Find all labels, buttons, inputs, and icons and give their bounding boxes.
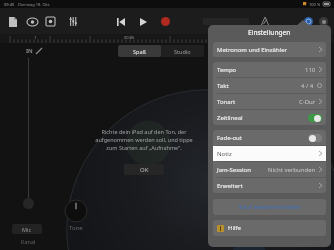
staticText: Kauf wiederherstellen (239, 203, 301, 211)
button[interactable]: Mixer (67, 15, 80, 28)
staticText: Fade-out (217, 134, 242, 142)
staticText: Spaß (133, 48, 146, 55)
button[interactable]: Zum Anfang (114, 15, 127, 28)
button[interactable]: Mic (12, 224, 42, 234)
button[interactable]: Mehr (319, 17, 328, 26)
staticText: Jam-Session (217, 166, 251, 174)
staticText: Tone (69, 224, 83, 232)
staticText: Richte dein iPad auf den Ton, der aufgen… (95, 128, 193, 152)
staticText: 110 (305, 66, 316, 74)
button[interactable]: Tempo (213, 62, 326, 77)
staticText: Tonart (217, 98, 236, 106)
staticText: Dienstag 18. Okt. (18, 2, 51, 7)
button[interactable]: Jam-Session (213, 162, 326, 177)
button[interactable]: Aufnahme (161, 17, 170, 26)
button[interactable]: Tracks (44, 15, 57, 28)
button[interactable]: Zeitlineal (213, 110, 326, 125)
staticText: Nicht verbunden (268, 166, 316, 174)
staticText: Metronom und Einzähler (217, 46, 288, 54)
staticText: C-Dur (299, 98, 316, 106)
button[interactable]: Abspielen (137, 15, 150, 28)
staticText: IN (26, 47, 33, 55)
staticText: Mic (22, 226, 32, 233)
staticText: Tempo (217, 66, 237, 74)
staticText: 09:45 (4, 2, 15, 7)
button[interactable]: Metronom und Einzähler (213, 42, 326, 57)
button[interactable]: Eingangspegel (23, 198, 34, 209)
button[interactable]: Spaß (118, 45, 161, 57)
button[interactable]: Hilfe (213, 220, 326, 236)
button[interactable]: OK (124, 164, 164, 175)
staticText: Kanal (21, 238, 36, 245)
staticText: Erweitert (217, 182, 243, 190)
button[interactable]: Einstellungen (304, 17, 313, 26)
staticText: 4 / 4 (301, 82, 314, 90)
staticText: Takt (217, 82, 229, 90)
button[interactable]: Tonart (213, 94, 326, 109)
staticText: 100 % (309, 2, 321, 7)
staticText: 00:06 (124, 35, 135, 40)
button[interactable]: Studio (161, 45, 204, 57)
staticText: 1 (34, 35, 37, 40)
button[interactable]: Fade-out (213, 130, 326, 145)
button[interactable]: Metronom (258, 15, 271, 28)
button[interactable]: Erweitert (213, 178, 326, 193)
staticText: Zeitlineal (217, 114, 243, 122)
staticText: Einstellungen (248, 28, 291, 37)
staticText: OK (140, 166, 149, 174)
staticText: Studio (174, 48, 191, 55)
button[interactable]: Notiz (213, 146, 326, 161)
button[interactable]: Tone Regler (65, 200, 87, 222)
button[interactable]: Bearbeiten (36, 48, 42, 54)
staticText: Notiz (217, 150, 232, 158)
button[interactable]: Loops (26, 15, 39, 28)
button[interactable]: Browser (6, 15, 19, 28)
button[interactable]: Kauf wiederherstellen (213, 199, 326, 215)
button[interactable]: Takt (213, 78, 326, 93)
staticText: Hilfe (228, 224, 241, 232)
